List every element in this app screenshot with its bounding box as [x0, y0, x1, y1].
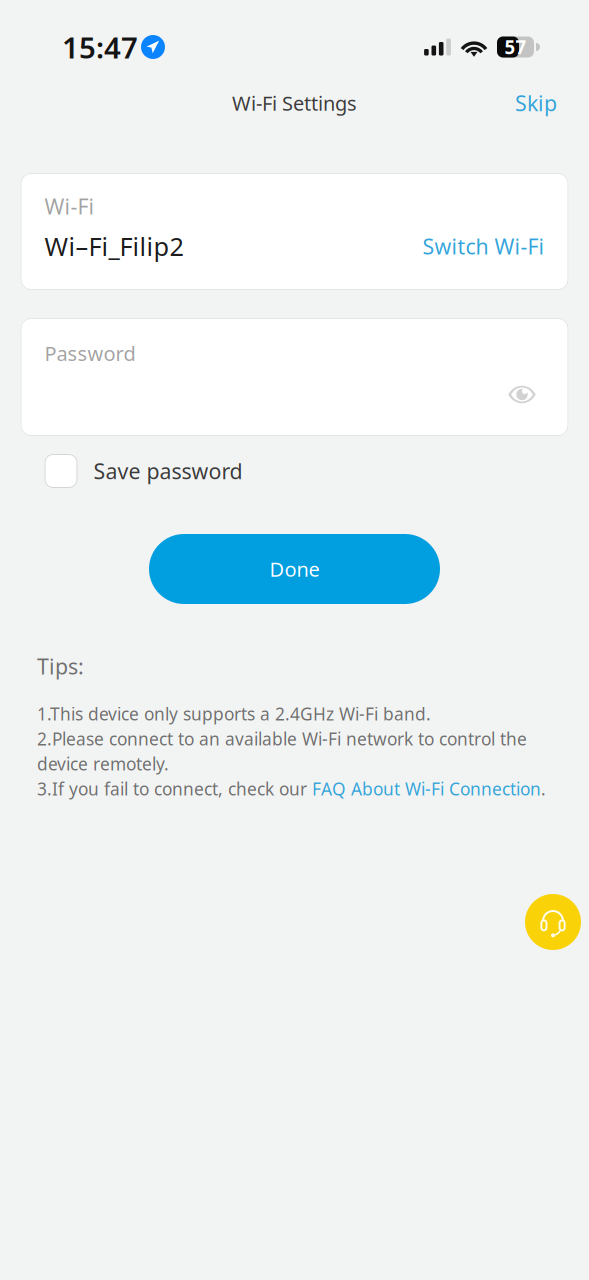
- staticText: FAQ About Wi-Fi Connection: [312, 777, 541, 800]
- button[interactable]: Skip: [503, 83, 569, 123]
- staticText: .: [541, 777, 546, 800]
- button[interactable]: Save password: [20, 449, 568, 493]
- staticText: 3.If you fail to connect, check our: [37, 777, 312, 800]
- staticText: Skip: [515, 89, 557, 117]
- staticText: 2.Please connect to an available Wi-Fi n…: [37, 727, 527, 750]
- button[interactable]: Done: [149, 534, 440, 604]
- staticText: 57: [504, 35, 526, 59]
- button[interactable]: Show password: [507, 384, 536, 405]
- staticText: Wi–Fi_Filip2: [44, 229, 183, 263]
- button[interactable]: Switch Wi-Fi: [422, 232, 544, 260]
- staticText: Tips:: [37, 652, 84, 680]
- staticText: 1.This device only supports a 2.4GHz Wi-…: [37, 702, 431, 725]
- staticText: Done: [269, 556, 319, 582]
- staticText: Wi-Fi: [44, 192, 94, 220]
- staticText: 15:47: [62, 27, 138, 66]
- button[interactable]: Customer support: [525, 894, 581, 950]
- staticText: Wi-Fi Settings: [232, 90, 357, 116]
- staticText: Save password: [93, 457, 242, 485]
- staticText: device remotely.: [37, 752, 169, 775]
- staticText: Password: [44, 340, 135, 367]
- button[interactable]: FAQ About Wi-Fi Connection: [312, 777, 541, 800]
- staticText: Switch Wi-Fi: [422, 232, 544, 260]
